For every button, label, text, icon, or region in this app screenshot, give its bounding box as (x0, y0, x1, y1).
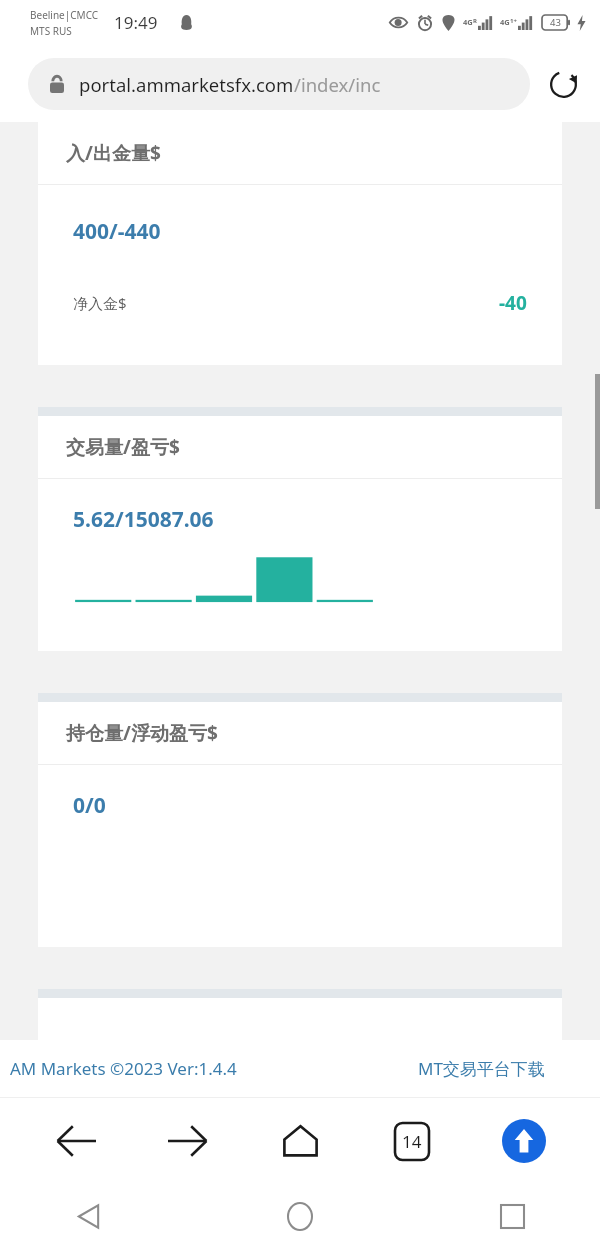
staticText: 19:49 (114, 11, 158, 34)
button[interactable]: Tabs, 14 open (376, 1105, 448, 1177)
staticText: 0/0 (73, 791, 106, 820)
staticText: 交易量/盈亏$ (66, 434, 180, 460)
staticText: 净入金$ (73, 293, 127, 313)
staticText: 持仓量/浮动盈亏$ (66, 720, 218, 746)
button[interactable]: MT交易平台下载 (418, 1057, 600, 1080)
button[interactable]: Recents (484, 1188, 540, 1244)
staticText: 4G (463, 17, 473, 27)
staticText: 400/-440 (73, 217, 161, 246)
button[interactable]: 入/出金量$ (38, 122, 562, 365)
staticText: R (473, 17, 477, 25)
button[interactable]: AM Markets ©2023 Ver:1.4.4 (0, 1057, 237, 1080)
button[interactable]: 持仓量/浮动盈亏$ (38, 693, 562, 947)
staticText: /index/inc (294, 72, 381, 97)
staticText: 入/出金量$ (66, 140, 161, 166)
button[interactable]: portal.ammarketsfx.com (28, 58, 530, 110)
button[interactable]: 交易量/盈亏$ (38, 407, 562, 651)
button[interactable]: Forward (152, 1105, 224, 1177)
staticText: portal.ammarketsfx.com (79, 72, 294, 97)
button[interactable]: Home (272, 1188, 328, 1244)
staticText: 4G (500, 17, 510, 27)
button[interactable]: Reload (540, 61, 586, 107)
staticText: -40 (499, 290, 527, 316)
button[interactable]: Back (60, 1188, 116, 1244)
staticText: 5.62/15087.06 (73, 505, 214, 534)
button[interactable]: Scroll to top (488, 1105, 560, 1177)
staticText: 1+ (510, 17, 517, 25)
button[interactable]: Back (40, 1105, 112, 1177)
staticText: 43 (550, 16, 561, 29)
staticText: Beeline|CMCC (30, 8, 99, 22)
button[interactable]: Home (264, 1105, 336, 1177)
staticText: MTS RUS (30, 24, 72, 38)
staticText: 14 (402, 1130, 422, 1153)
